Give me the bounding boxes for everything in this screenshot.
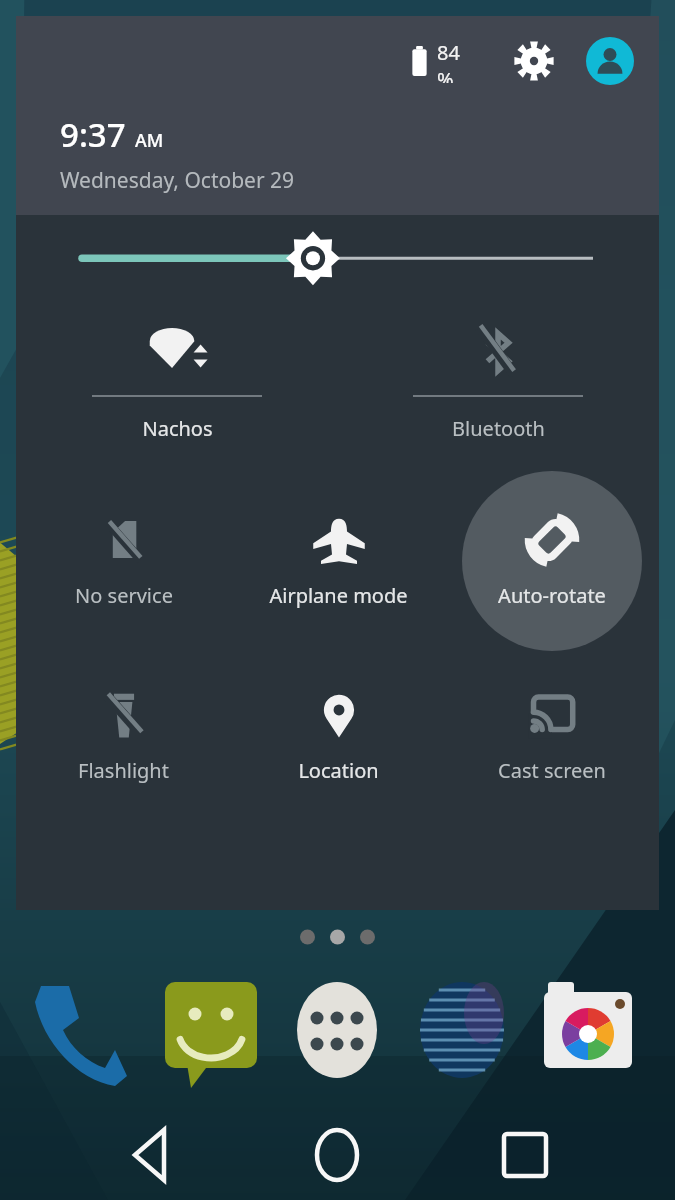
button[interactable]: Cast screen <box>445 656 659 821</box>
staticText: 84% <box>437 39 469 83</box>
button[interactable]: Auto-rotate <box>445 470 659 656</box>
button[interactable]: Airplane mode <box>231 470 445 656</box>
button[interactable]: Browser <box>405 980 540 1080</box>
button[interactable]: Flashlight <box>16 656 231 821</box>
staticText: Auto-rotate <box>498 582 606 609</box>
button[interactable]: Phone <box>0 980 135 1080</box>
button[interactable]: No service <box>16 470 231 656</box>
button[interactable]: Battery 84 percent <box>411 39 469 83</box>
button[interactable]: Back <box>0 1108 225 1200</box>
button[interactable]: Camera <box>540 980 675 1080</box>
staticText: No service <box>75 582 173 609</box>
button[interactable]: Location <box>231 656 445 821</box>
button[interactable]: Messaging <box>135 980 270 1080</box>
staticText: Airplane mode <box>269 582 408 609</box>
button[interactable]: Nachos <box>16 307 337 470</box>
button[interactable]: Apps <box>270 980 405 1080</box>
button[interactable]: Recent apps <box>450 1108 675 1200</box>
button[interactable]: Settings <box>507 34 561 88</box>
staticText: Location <box>298 757 379 784</box>
button[interactable]: Home <box>225 1108 450 1200</box>
staticText: Flashlight <box>78 757 169 784</box>
staticText: 9:37 <box>60 112 126 157</box>
staticText: AM <box>135 128 164 153</box>
staticText: Cast screen <box>498 757 606 784</box>
button[interactable]: Bluetooth <box>337 307 659 470</box>
button[interactable]: User profile <box>583 34 637 88</box>
button[interactable]: Brightness <box>16 215 659 307</box>
staticText: Wednesday, October 29 <box>60 166 295 195</box>
staticText: Bluetooth <box>452 415 545 442</box>
staticText: Nachos <box>142 415 213 442</box>
